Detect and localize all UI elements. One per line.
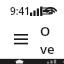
- staticText: Overview: [40, 22, 56, 58]
- button[interactable]: Menu: [8, 27, 34, 53]
- button[interactable]: Stats: [38, 59, 64, 64]
- button[interactable]: Home: [0, 59, 38, 64]
- staticText: 9:41: [10, 4, 30, 18]
